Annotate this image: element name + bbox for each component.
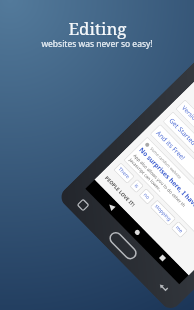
- button[interactable]: Version 4.0 is out: [175, 99, 194, 196]
- button[interactable]: Get Started: [162, 111, 194, 208]
- button[interactable]: There: [113, 162, 135, 184]
- staticText: And its Free!: [154, 129, 187, 162]
- button[interactable]: Some random website: [123, 136, 194, 247]
- staticText: is: [133, 182, 141, 190]
- staticText: Get Started: [167, 116, 194, 147]
- staticText: PEOPLE LOVE IT!: [103, 175, 137, 209]
- other: Home: [105, 227, 141, 264]
- button[interactable]: no: [138, 188, 155, 205]
- staticText: No surprises here, I have e: [137, 145, 194, 214]
- other: Recent apps: [72, 194, 94, 216]
- staticText: Version 4.0 is out: [180, 104, 194, 145]
- staticText: stopping: [153, 203, 173, 223]
- button[interactable]: And its Free!: [149, 124, 194, 221]
- button[interactable]: me: [171, 221, 188, 238]
- staticText: me: [174, 224, 185, 235]
- staticText: Javascript can lower...: [128, 157, 164, 193]
- staticText: Some random website: [149, 146, 183, 180]
- staticText: There: [117, 166, 131, 181]
- staticText: websites was never so easy!: [41, 38, 153, 50]
- button[interactable]: stopping: [149, 199, 176, 226]
- button[interactable]: is: [129, 179, 144, 193]
- staticText: no: [142, 191, 152, 201]
- staticText: Editing: [68, 17, 127, 40]
- other: Back: [152, 275, 174, 298]
- staticText: App also allows you to do other th: [132, 152, 187, 208]
